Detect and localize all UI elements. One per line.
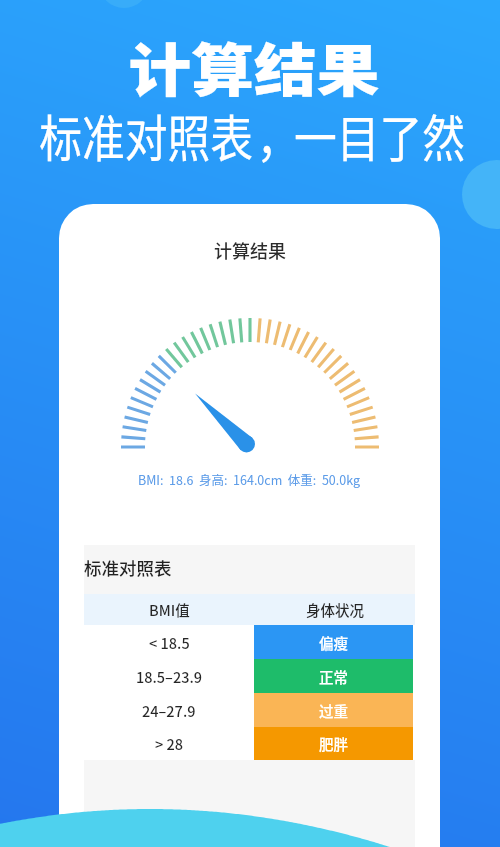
staticText: 偏瘦 — [319, 632, 348, 653]
other: BMI 指针仪表盘 — [59, 308, 440, 468]
staticText: > 28 — [155, 733, 184, 754]
staticText: 计算结果 — [214, 237, 286, 263]
staticText: BMI值 — [149, 599, 190, 620]
staticText: < 18.5 — [149, 632, 190, 653]
button[interactable]: 身体状况 — [254, 594, 415, 625]
button[interactable]: > 28 — [84, 727, 415, 760]
staticText: 身体状况 — [306, 599, 364, 620]
staticText: 计算结果 — [129, 25, 379, 108]
staticText: 一目了然 — [294, 99, 465, 171]
button[interactable]: 24–27.9 — [84, 693, 415, 727]
staticText: 24–27.9 — [142, 700, 196, 721]
staticText: 正常 — [319, 666, 348, 687]
staticText: 过重 — [319, 700, 348, 721]
button[interactable]: 18.5–23.9 — [84, 659, 415, 693]
staticText: 18.5–23.9 — [136, 666, 203, 687]
staticText: ， — [256, 99, 299, 171]
staticText: 标准对照表 — [39, 99, 253, 171]
button[interactable]: < 18.5 — [84, 625, 415, 659]
staticText: 标准对照表 — [84, 555, 172, 580]
staticText: BMI: 18.6 身高: 164.0cm 体重: 50.0kg — [138, 470, 361, 488]
button[interactable]: BMI值 — [84, 594, 254, 625]
staticText: 肥胖 — [319, 733, 348, 754]
